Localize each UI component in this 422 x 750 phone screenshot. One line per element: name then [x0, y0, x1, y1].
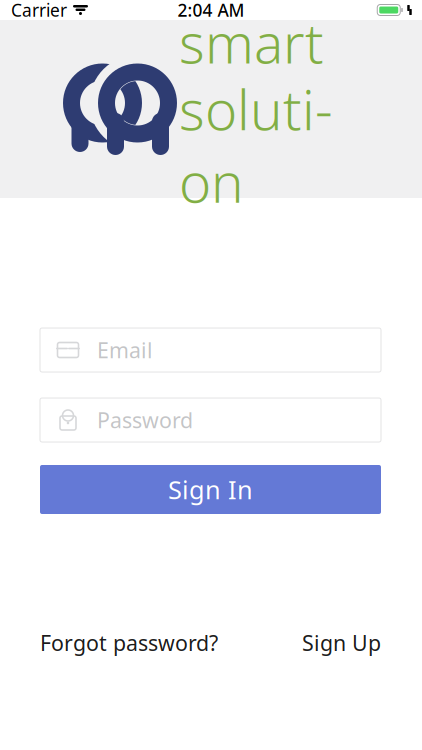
staticText: Sign Up: [302, 629, 381, 657]
staticText: Email: [97, 336, 153, 364]
button[interactable]: Forgot password?: [40, 629, 218, 657]
staticText: Password: [97, 406, 193, 434]
button[interactable]: Email: [40, 328, 381, 372]
staticText: Sign In: [168, 473, 253, 506]
staticText: solution: [179, 73, 333, 218]
button[interactable]: Password: [40, 398, 381, 442]
button[interactable]: Sign Up: [302, 629, 381, 657]
staticText: Carrier: [11, 0, 67, 21]
staticText: smart: [179, 6, 324, 79]
button[interactable]: Sign In: [40, 465, 381, 514]
staticText: Forgot password?: [40, 629, 218, 657]
staticText: 2:04 AM: [177, 0, 244, 21]
